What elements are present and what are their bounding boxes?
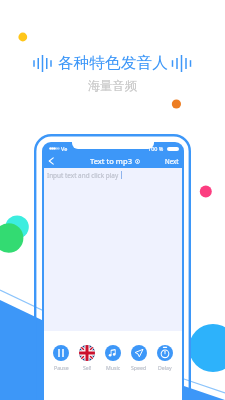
staticText: Input text and click play [47,171,119,180]
staticText: Pause [54,364,69,371]
button[interactable]: Music [100,345,126,371]
staticText: 100 % [148,145,164,152]
button[interactable]: Speed [126,345,152,371]
staticText: Text to mp3 [90,156,132,166]
staticText: Speed [131,364,147,371]
staticText: Music [106,364,121,371]
staticText: Delay [158,364,172,371]
staticText: 海量音频 [88,78,138,93]
button[interactable]: Input text and click play [44,168,182,331]
staticText: Ve [61,145,68,152]
staticText: Next [165,157,179,165]
button[interactable]: Delay [152,345,178,371]
staticText: 各种特色发音人 [58,53,168,73]
staticText: Sel! [83,364,92,371]
button[interactable]: Sel! [74,345,100,371]
button[interactable]: Pause [48,345,74,371]
button[interactable]: Next [160,155,184,167]
button[interactable]: Back [44,154,58,168]
